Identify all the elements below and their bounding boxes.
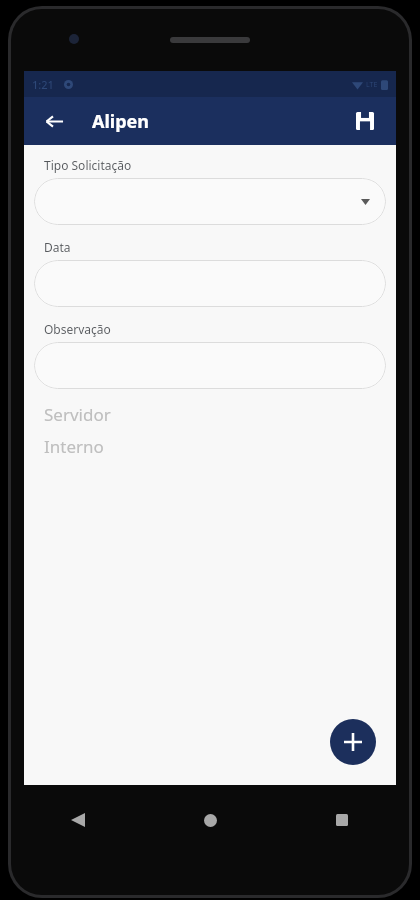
staticText: Data [44,239,71,255]
staticText: Servidor [44,403,111,426]
button[interactable]: Home [193,803,227,837]
button[interactable]: Add [330,719,376,765]
button[interactable]: Recent apps [325,803,359,837]
button[interactable] [34,342,386,389]
staticText: Observação [44,321,111,337]
button[interactable]: Back [61,803,95,837]
button[interactable]: Back [38,105,70,137]
button[interactable] [34,178,386,225]
staticText: Tipo Solicitação [44,157,132,173]
staticText: LTE [366,80,378,90]
button[interactable]: Save [348,104,382,138]
staticText: 1:21 [32,77,54,92]
staticText: Interno [44,435,104,458]
staticText: Alipen [92,109,150,134]
button[interactable] [34,260,386,307]
button[interactable]: Servidor [34,403,386,426]
button[interactable]: Interno [34,435,386,458]
